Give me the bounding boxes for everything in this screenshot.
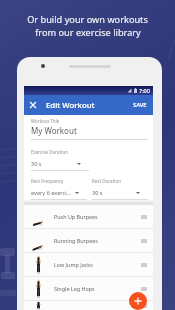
button[interactable]: Push Up Burpees — [24, 205, 153, 229]
staticText: Single Leg Hops — [54, 285, 95, 292]
staticText: SAVE — [133, 101, 147, 109]
staticText: 30 s — [31, 160, 42, 168]
button[interactable]: every 6 exerci... — [31, 184, 87, 200]
button[interactable]: Close — [24, 96, 42, 114]
button[interactable]: Add exercise — [129, 292, 147, 310]
staticText: My Workout — [31, 125, 77, 136]
staticText: Or build your own workouts — [27, 13, 148, 26]
staticText: 7:00 — [139, 87, 150, 94]
staticText: Edit Workout — [46, 100, 95, 111]
staticText: from our exercise library — [35, 26, 141, 39]
staticText: Workout Title — [31, 118, 60, 124]
staticText: Push Up Burpees — [54, 213, 98, 220]
staticText: Rest Duration — [92, 178, 121, 184]
staticText: every 6 exerci... — [31, 189, 72, 197]
button[interactable]: 30 s — [31, 155, 89, 171]
button[interactable]: Running Burpees — [24, 229, 153, 253]
staticText: 30 s — [92, 189, 103, 197]
button[interactable]: Single Leg Hops — [24, 277, 153, 301]
staticText: Exercise Duration — [31, 149, 68, 155]
staticText: Rest Frequency — [31, 178, 64, 184]
button[interactable]: Low Jump Jacks — [24, 253, 153, 277]
staticText: Running Burpees — [54, 237, 98, 244]
button[interactable]: 30 s — [92, 184, 148, 200]
staticText: Low Jump Jacks — [54, 261, 93, 268]
button[interactable]: SAVE — [127, 95, 153, 115]
button[interactable] — [24, 301, 153, 310]
